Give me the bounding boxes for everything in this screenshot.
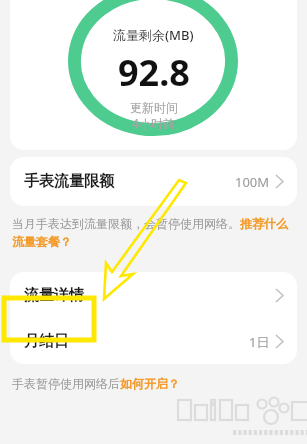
button[interactable]: 手表流量限额 (10, 157, 297, 206)
staticText: 1日 (249, 333, 270, 351)
staticText: 手表流量限额 (24, 172, 114, 191)
staticText: 更新时间 (130, 100, 178, 115)
staticText: 手表暂停使用网络后如何开启？ (12, 376, 180, 391)
staticText: 月结日 (24, 332, 69, 351)
staticText: 流量剩余(MB) (113, 26, 194, 44)
button[interactable]: 月结日 (10, 319, 297, 364)
button[interactable]: 流量详情 (10, 272, 297, 319)
staticText: 100M (235, 173, 270, 191)
staticText: 4小时前 (132, 115, 175, 131)
staticText: 流量详情 (24, 286, 84, 305)
staticText: 92.8 (118, 48, 190, 97)
staticText: 当月手表达到流量限额，会暂停使用网络。推荐什么流量套餐？ (12, 216, 295, 250)
